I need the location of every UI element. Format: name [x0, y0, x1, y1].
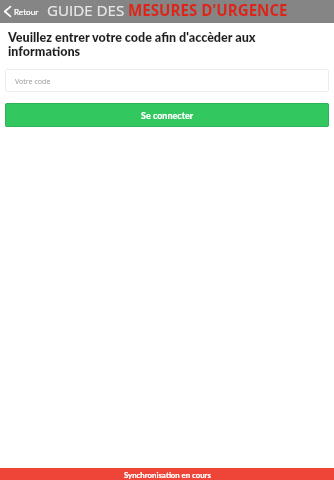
staticText: Retour — [14, 7, 39, 17]
staticText: Votre code — [15, 76, 51, 86]
button[interactable]: Se connecter — [5, 103, 329, 127]
button[interactable]: Retour — [0, 0, 47, 23]
staticText: Veuillez entrer votre code afin d'accède… — [8, 30, 284, 58]
staticText: GUIDE DES MESURES D'URGENCE — [47, 0, 288, 21]
staticText: Synchronisation en cours — [124, 470, 211, 479]
staticText: Se connecter — [141, 110, 194, 121]
button[interactable]: Votre code — [5, 69, 329, 92]
